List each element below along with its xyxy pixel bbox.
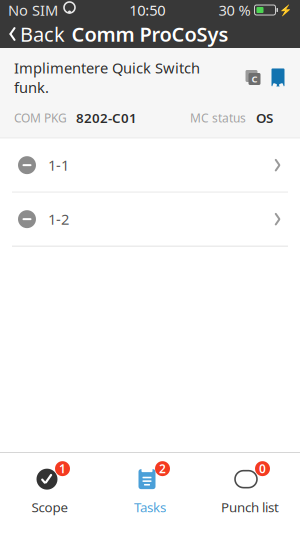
button[interactable]: Back	[0, 19, 73, 49]
button[interactable]: Commissioning package	[240, 65, 266, 89]
staticText: Implimentere Quick Switch funk.	[14, 58, 200, 97]
staticText: 8202-C01	[76, 109, 137, 127]
button[interactable]: Bookmark	[266, 65, 290, 89]
staticText: 1	[59, 461, 66, 477]
staticText: 10:50	[129, 0, 165, 20]
staticText: MC status	[190, 110, 246, 126]
staticText: 1-1	[48, 155, 69, 175]
staticText: 30 %	[218, 0, 250, 20]
staticText: No SIM	[8, 0, 58, 20]
staticText: Scope	[31, 498, 68, 516]
button[interactable]: 1-1	[0, 139, 300, 192]
staticText: COM PKG	[14, 110, 67, 126]
button[interactable]: 2	[100, 453, 200, 515]
staticText: 2	[159, 461, 166, 477]
button[interactable]: 1-2	[0, 193, 300, 246]
staticText: OS	[256, 109, 273, 127]
staticText: ⚡	[279, 4, 292, 16]
staticText: Tasks	[134, 498, 166, 516]
staticText: C	[251, 73, 257, 85]
staticText: Back	[20, 21, 65, 47]
button[interactable]: 0	[200, 453, 300, 515]
staticText: Comm ProCoSys	[71, 21, 228, 47]
staticText: 0	[259, 461, 266, 477]
button[interactable]: 1	[0, 453, 100, 515]
staticText: 1-2	[48, 209, 69, 229]
staticText: Punch list	[221, 498, 279, 516]
